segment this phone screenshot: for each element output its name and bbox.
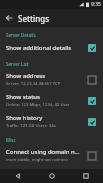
staticText: Show history xyxy=(6,114,43,122)
staticText: Connect using domain not IP xyxy=(6,148,83,156)
button[interactable]: Show address xyxy=(0,69,103,90)
staticText: Server Details xyxy=(6,32,36,38)
button[interactable]: Home xyxy=(35,169,69,183)
staticText: Settings xyxy=(18,13,50,24)
staticText: Online: 123 Mbps, 123d, 42 User xyxy=(6,102,70,108)
button[interactable]: Back xyxy=(0,9,18,27)
button[interactable]: Back xyxy=(0,169,35,183)
button[interactable]: Show additional details xyxy=(0,40,103,56)
button[interactable]: Show history xyxy=(0,111,103,132)
staticText: Show status xyxy=(6,93,40,101)
staticText: Traffic: 123 GB Users: 34x xyxy=(6,123,56,129)
staticText: Show address xyxy=(6,72,46,80)
staticText: Server List xyxy=(6,61,29,67)
staticText: Misc xyxy=(6,137,16,143)
button[interactable]: Connect using domain not IP xyxy=(0,145,103,166)
button[interactable]: Recents xyxy=(69,169,103,183)
staticText: Show additional details xyxy=(6,44,72,52)
staticText: 9:35 xyxy=(91,1,101,8)
button[interactable]: Show status xyxy=(0,90,103,111)
staticText: Server: 12.23.34.48:667 TCP xyxy=(6,81,61,87)
staticText: more stable, might not connect xyxy=(6,157,68,163)
